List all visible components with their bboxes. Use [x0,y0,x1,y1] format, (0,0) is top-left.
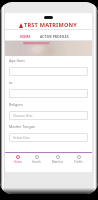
button[interactable] [9,89,88,98]
staticText: Profile [74,160,83,164]
button[interactable]: HOME [20,30,31,40]
staticText: Religion [9,102,23,107]
staticText: to [9,80,13,85]
button[interactable]: Select One [9,133,88,142]
staticText: Age from [9,58,25,63]
staticText: Select One [13,135,30,140]
button[interactable]: Choose One [9,111,88,120]
staticText: TRST MATRIMONY [24,21,78,29]
staticText: Choose One [13,113,33,118]
staticText: HOME [20,34,31,39]
button[interactable] [9,67,88,76]
staticText: Matches [52,160,64,164]
button[interactable]: Home [13,153,23,164]
staticText: Home [14,160,22,164]
button[interactable]: Profile [73,153,84,164]
button[interactable]: Search [31,153,42,164]
staticText: Search [32,160,41,164]
staticText: ACTIVE PROFILES [40,34,69,39]
button[interactable]: ACTIVE PROFILES [40,30,69,39]
staticText: Mother Tongue [9,124,35,129]
button[interactable]: Matches [51,153,65,164]
